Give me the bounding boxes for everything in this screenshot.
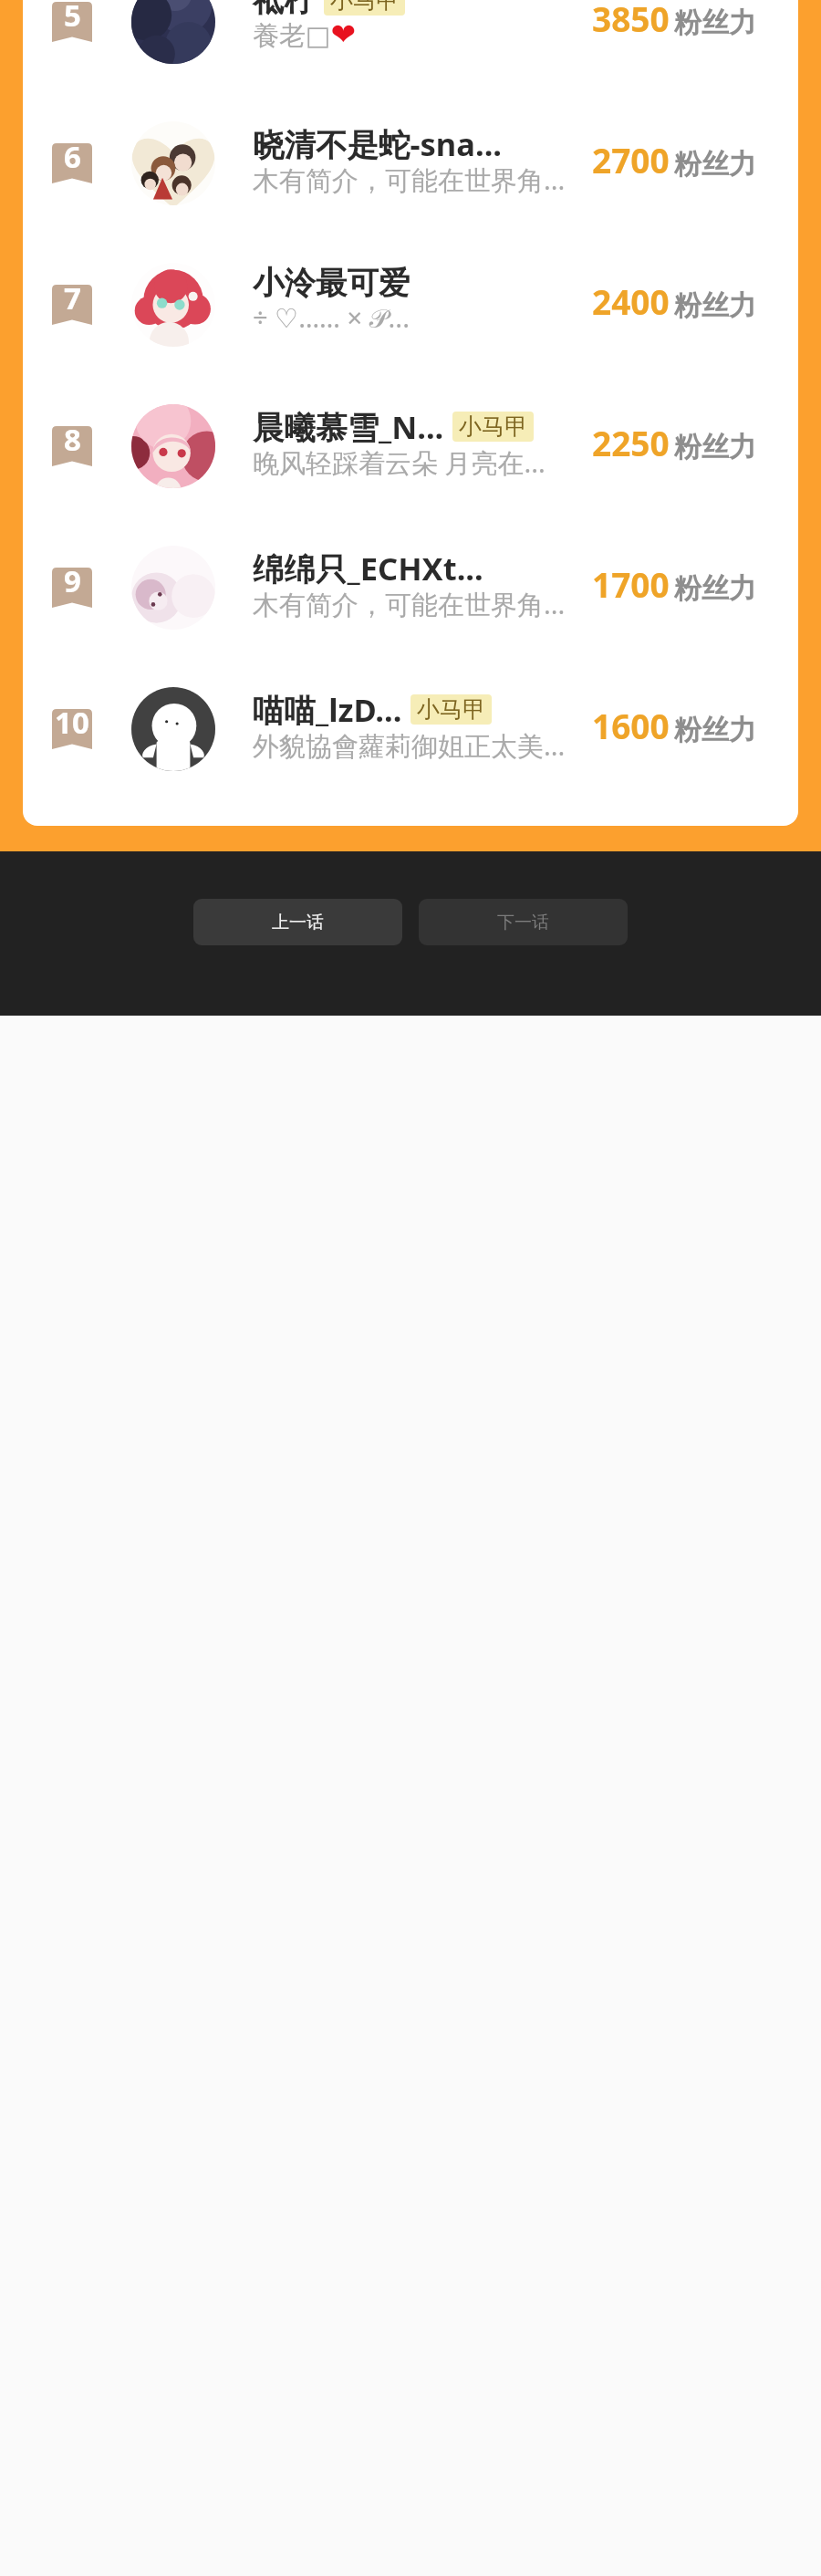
button[interactable]: 第5名 祗柠 bbox=[23, 0, 798, 92]
staticText: 小马甲 bbox=[459, 412, 527, 441]
button[interactable]: 第6名 晓清不是蛇-sna... bbox=[23, 92, 798, 234]
staticText: 粉丝力 bbox=[674, 147, 756, 182]
staticText: 上一话 bbox=[272, 912, 324, 933]
staticText: 绵绵只_ECHXt... bbox=[253, 547, 483, 589]
staticText: 木有简介，可能在世界角... bbox=[253, 162, 566, 198]
staticText: 2700 bbox=[592, 137, 670, 183]
staticText: 8 bbox=[64, 419, 81, 459]
staticText: ÷ ♡…… × 𝒫... bbox=[253, 299, 410, 335]
staticText: 9 bbox=[64, 560, 81, 600]
staticText: 6 bbox=[64, 136, 81, 176]
button[interactable]: 下一话 bbox=[419, 899, 628, 945]
staticText: 3850 bbox=[592, 0, 670, 41]
button[interactable]: 第10名 喵喵_lzD... bbox=[23, 658, 798, 799]
staticText: 外貌協會蘿莉御姐正太美... bbox=[253, 727, 566, 764]
staticText: 1700 bbox=[592, 561, 670, 607]
staticText: 2400 bbox=[592, 278, 670, 324]
staticText: 粉丝力 bbox=[674, 5, 756, 40]
staticText: 養老□❤️ bbox=[253, 16, 357, 52]
staticText: 晨曦慕雪_N... bbox=[253, 405, 444, 448]
staticText: 喵喵_lzD... bbox=[253, 688, 402, 731]
staticText: 7 bbox=[64, 277, 81, 318]
staticText: 小泠最可爱 bbox=[253, 264, 410, 303]
button[interactable]: 第8名 晨曦慕雪_N... bbox=[23, 375, 798, 516]
staticText: 晓清不是蛇-sna... bbox=[253, 122, 503, 165]
staticText: 粉丝力 bbox=[674, 571, 756, 606]
staticText: 粉丝力 bbox=[674, 713, 756, 747]
staticText: 祗柠 bbox=[253, 0, 316, 20]
staticText: 晚风轻踩着云朵 月亮在... bbox=[253, 444, 546, 481]
staticText: 小马甲 bbox=[330, 0, 399, 15]
staticText: 2250 bbox=[592, 420, 670, 465]
button[interactable]: 第7名 小泠最可爱 bbox=[23, 234, 798, 375]
staticText: 粉丝力 bbox=[674, 288, 756, 323]
button[interactable]: 第9名 绵绵只_ECHXt... bbox=[23, 516, 798, 658]
staticText: 5 bbox=[64, 0, 81, 35]
staticText: 下一话 bbox=[497, 912, 549, 933]
staticText: 小马甲 bbox=[417, 695, 485, 724]
staticText: 粉丝力 bbox=[674, 430, 756, 464]
staticText: 木有简介，可能在世界角... bbox=[253, 586, 566, 622]
staticText: 10 bbox=[55, 702, 89, 742]
staticText: 1600 bbox=[592, 703, 670, 748]
button[interactable]: 上一话 bbox=[193, 899, 402, 945]
